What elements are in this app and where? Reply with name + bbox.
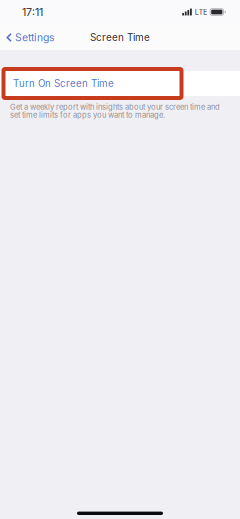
button[interactable]: Turn On Screen Time — [0, 71, 240, 96]
staticText: LTE — [195, 7, 207, 16]
staticText: Get a weekly report with insights about … — [10, 102, 220, 112]
staticText: set time limits for apps you want to man… — [10, 110, 165, 120]
staticText: Screen Time — [90, 31, 150, 43]
staticText: Settings — [15, 31, 54, 44]
staticText: 17:11 — [22, 5, 43, 18]
button[interactable]: Settings — [0, 24, 62, 50]
staticText: Turn On Screen Time — [13, 78, 114, 89]
